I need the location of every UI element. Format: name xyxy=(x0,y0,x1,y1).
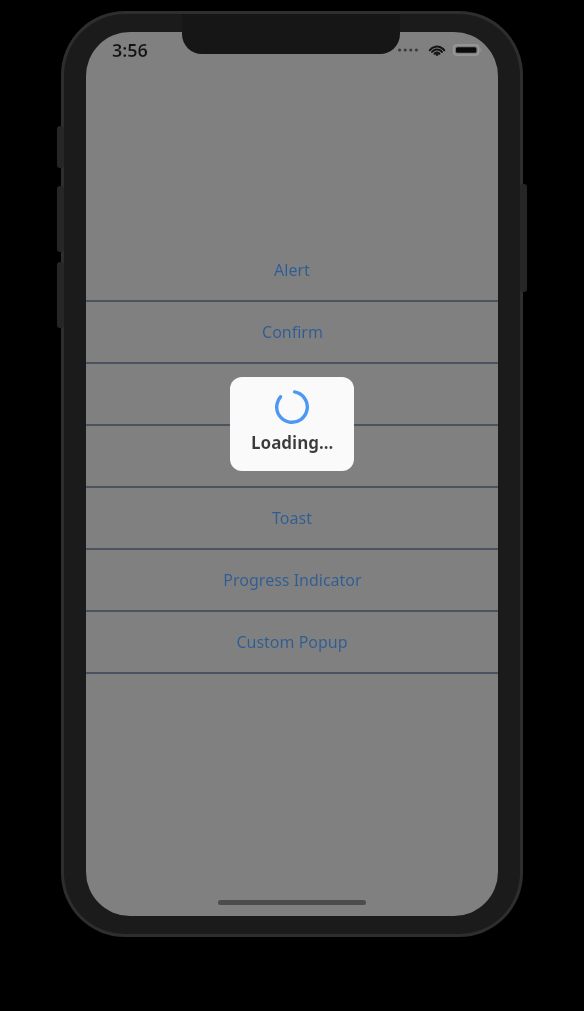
staticText: Loading xyxy=(262,445,323,467)
staticText: Progress Indicator xyxy=(223,569,362,591)
staticText: Prompt xyxy=(264,383,321,405)
button[interactable]: Toast xyxy=(86,488,498,548)
staticText: Toast xyxy=(272,507,312,529)
staticText: Loading... xyxy=(251,431,334,454)
button[interactable]: Alert xyxy=(86,240,498,300)
staticText: Custom Popup xyxy=(236,631,348,653)
other: Cellular signal xyxy=(398,43,421,57)
staticText: Alert xyxy=(274,259,310,281)
button[interactable]: Prompt xyxy=(86,364,498,424)
other: Battery xyxy=(453,43,482,57)
other: Wi-Fi xyxy=(428,43,446,57)
button[interactable]: Progress Indicator xyxy=(86,550,498,610)
button[interactable]: Confirm xyxy=(86,302,498,362)
button[interactable]: Custom Popup xyxy=(86,612,498,672)
button[interactable]: Loading xyxy=(86,426,498,486)
staticText: Confirm xyxy=(262,321,323,343)
staticText: 3:56 xyxy=(112,38,148,63)
